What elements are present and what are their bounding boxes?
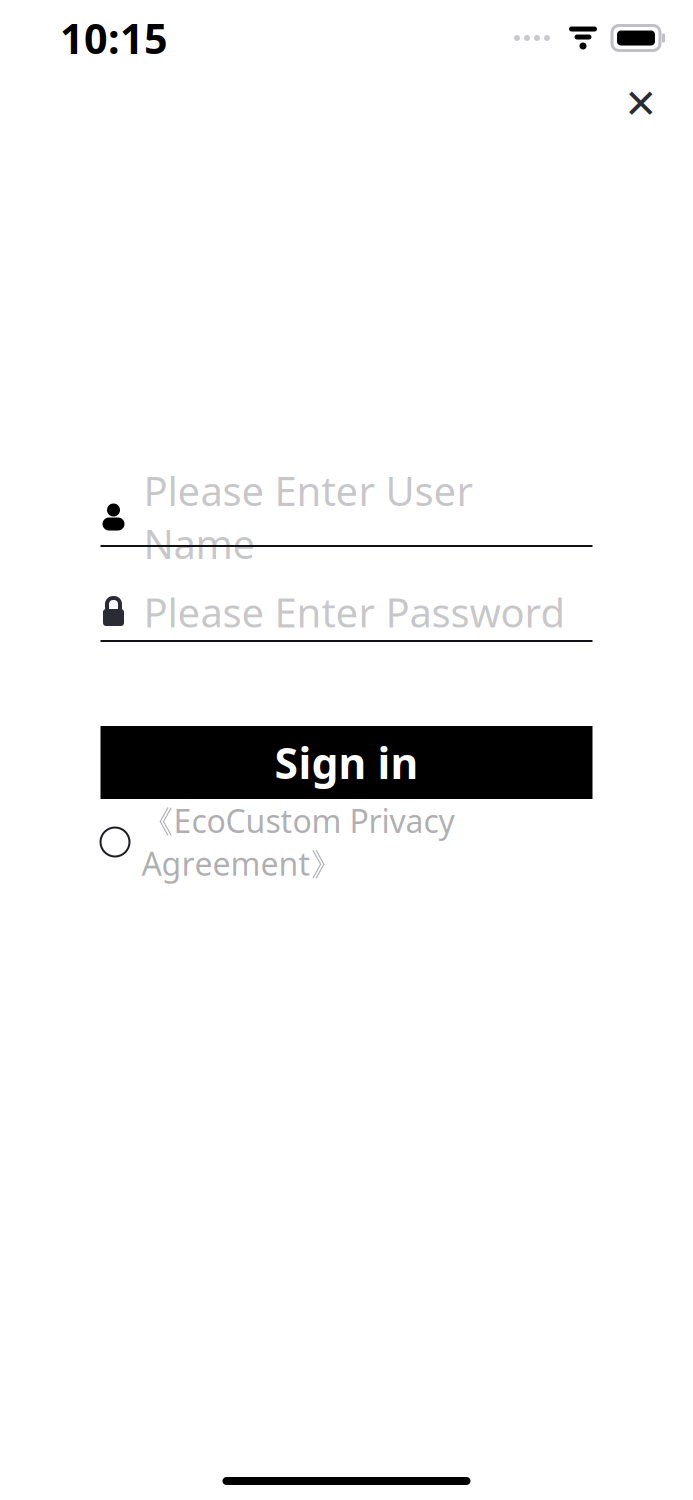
button[interactable]: Sign in — [100, 726, 592, 799]
staticText: Sign in — [274, 734, 418, 791]
staticText: 《EcoCustom Privacy Agreement》 — [141, 799, 454, 885]
staticText: Please Enter User Name — [143, 464, 473, 570]
staticText: ✕ — [624, 81, 658, 127]
button[interactable]: Please Enter Password — [100, 584, 592, 642]
staticText: Please Enter Password — [143, 585, 565, 638]
button[interactable]: Please Enter User Name — [100, 489, 592, 547]
button[interactable]: 《EcoCustom Privacy Agreement》 — [100, 819, 592, 865]
button[interactable]: Close — [613, 76, 669, 132]
staticText: 10:15 — [60, 11, 168, 65]
